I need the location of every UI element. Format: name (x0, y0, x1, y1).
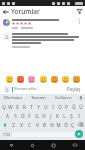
button[interactable]: Ö (62, 121, 69, 128)
button[interactable]: Emoji 4 (50, 75, 58, 83)
button[interactable]: Emoji 2 (27, 75, 35, 83)
staticText: T (30, 104, 33, 110)
button[interactable]: F (26, 112, 33, 119)
staticText: N (50, 122, 54, 128)
staticText: Ö (64, 122, 68, 128)
staticText: İ (78, 113, 80, 119)
staticText: U (44, 104, 48, 110)
staticText: Y (37, 104, 40, 110)
button[interactable]: A (3, 112, 11, 119)
button[interactable]: Paylaş (66, 85, 82, 93)
button[interactable]: Shift (1, 121, 9, 128)
button[interactable]: Filter (74, 6, 85, 17)
button[interactable]: Back (0, 6, 11, 17)
staticText: Z (12, 122, 15, 128)
button[interactable]: T (28, 103, 35, 110)
staticText: Q (2, 104, 6, 110)
button[interactable]: Yorum ekle... (12, 86, 66, 92)
button[interactable]: U (42, 103, 49, 110)
button[interactable]: Ğ (70, 103, 77, 110)
staticText: M (56, 122, 61, 128)
staticText: Ü (79, 104, 83, 110)
button[interactable]: More options (77, 19, 82, 24)
button[interactable]: ?123 (2, 130, 11, 138)
staticText: R (23, 104, 26, 110)
staticText: O (58, 104, 62, 110)
staticText: ?123 (3, 132, 11, 137)
button[interactable]: Voice input (76, 94, 85, 102)
button[interactable]: Emoji 0 (5, 75, 13, 83)
staticText: Merhaba (4, 95, 22, 101)
button[interactable]: G (33, 112, 40, 119)
button[interactable]: B (41, 121, 48, 128)
button[interactable]: Switch keyboard (64, 140, 85, 150)
button[interactable]: M (55, 121, 62, 128)
button[interactable]: W (7, 103, 14, 110)
button[interactable]: Q (1, 103, 7, 110)
button[interactable]: V (33, 121, 41, 128)
staticText: P (65, 104, 68, 110)
staticText: G (35, 113, 39, 119)
button[interactable]: Recents (43, 140, 64, 150)
button[interactable]: H (40, 112, 47, 119)
button[interactable]: Home (22, 140, 43, 150)
button[interactable]: X (17, 121, 25, 128)
staticText: Tamam (31, 95, 46, 101)
button[interactable]: Backspace (76, 121, 84, 128)
button[interactable]: Y (35, 103, 42, 110)
staticText: Yorum ekle... (14, 86, 40, 92)
staticText: V (36, 122, 39, 128)
staticText: Kullanıcı (55, 95, 72, 101)
button[interactable]: S (11, 112, 19, 119)
staticText: K (56, 113, 59, 119)
button[interactable]: Tamam (26, 94, 51, 102)
staticText: Ş (70, 113, 73, 119)
button[interactable]: Kullanıcı (51, 94, 76, 102)
button[interactable]: P (63, 103, 70, 110)
staticText: B (43, 122, 46, 128)
button[interactable]: N (48, 121, 55, 128)
staticText: C (28, 122, 31, 128)
button[interactable]: K (54, 112, 61, 119)
button[interactable]: Emoji 6 (72, 75, 80, 83)
button[interactable]: Ü (77, 103, 84, 110)
staticText: X (20, 122, 23, 128)
button[interactable]: Send (75, 130, 83, 138)
button[interactable]: L (61, 112, 68, 119)
button[interactable]: R (21, 103, 28, 110)
button[interactable]: Z (9, 121, 17, 128)
button[interactable]: J (47, 112, 54, 119)
staticText: D (21, 113, 25, 119)
staticText: Paylaş (67, 86, 81, 92)
button[interactable] (0, 31, 85, 50)
staticText: J (50, 113, 52, 119)
staticText: A (6, 113, 9, 119)
staticText: Ç (71, 122, 74, 128)
staticText: F (28, 113, 31, 119)
button[interactable]: İ (75, 112, 82, 119)
button[interactable]: Emoji 3 (39, 75, 47, 83)
button[interactable]: Emoji 1 (16, 75, 24, 83)
button[interactable]: Ç (69, 121, 76, 128)
button[interactable]: More options (0, 17, 85, 31)
button[interactable]: I (49, 103, 56, 110)
staticText: Ğ (72, 104, 76, 110)
staticText: Yorumlar (11, 7, 40, 16)
staticText: E (16, 104, 19, 110)
staticText: S (14, 113, 17, 119)
staticText: H (42, 113, 46, 119)
staticText: L (63, 113, 66, 119)
button[interactable]: C (25, 121, 33, 128)
button[interactable]: Merhaba (0, 94, 26, 102)
staticText: W (8, 104, 13, 110)
button[interactable]: O (56, 103, 63, 110)
button[interactable]: Ş (68, 112, 75, 119)
button[interactable]: D (19, 112, 26, 119)
button[interactable]: Back (0, 140, 22, 150)
staticText: I (52, 104, 54, 110)
button[interactable]: Emoji 5 (61, 75, 69, 83)
button[interactable]: E (14, 103, 21, 110)
